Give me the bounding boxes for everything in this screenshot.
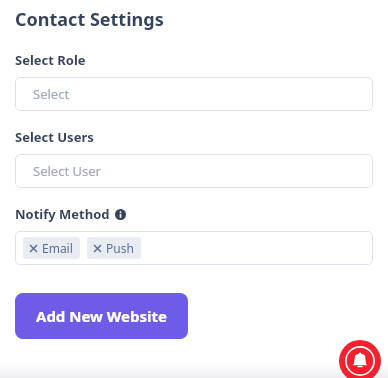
staticText: Contact Settings (15, 7, 164, 32)
button[interactable]: Notifications (339, 340, 381, 378)
button[interactable]: Push (87, 237, 141, 259)
button[interactable]: Select (15, 77, 373, 111)
button[interactable]: Email (23, 237, 80, 259)
button[interactable]: Add New Website (15, 293, 188, 339)
staticText: Add New Website (36, 306, 167, 326)
staticText: Select Users (15, 128, 94, 146)
staticText: Email (42, 240, 73, 256)
staticText: Select Role (15, 51, 86, 69)
staticText: Push (106, 240, 134, 256)
staticText: Select (33, 85, 70, 103)
staticText: Select User (33, 162, 101, 180)
staticText: Notify Method (15, 205, 110, 223)
button[interactable]: Select User (15, 154, 373, 188)
button[interactable]: Email (15, 231, 373, 265)
